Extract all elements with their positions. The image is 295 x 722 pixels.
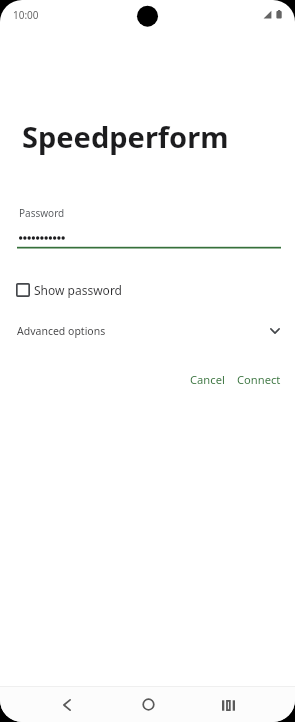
staticText: Speedperform	[22, 117, 229, 156]
button[interactable]: Recent apps	[206, 692, 251, 718]
button[interactable]: Connect	[232, 369, 285, 389]
staticText: Password	[19, 206, 65, 220]
staticText: Connect	[237, 372, 281, 387]
staticText: 10:00	[13, 8, 39, 22]
button[interactable]: Show password	[16, 280, 124, 300]
staticText: Advanced options	[17, 324, 106, 338]
staticText: Show password	[34, 282, 122, 298]
button[interactable]: Advanced options	[14, 320, 282, 342]
button[interactable]: Home	[126, 691, 171, 717]
button[interactable]: Back	[44, 692, 89, 718]
button[interactable]: Cancel	[185, 369, 230, 389]
staticText: Cancel	[190, 372, 225, 387]
